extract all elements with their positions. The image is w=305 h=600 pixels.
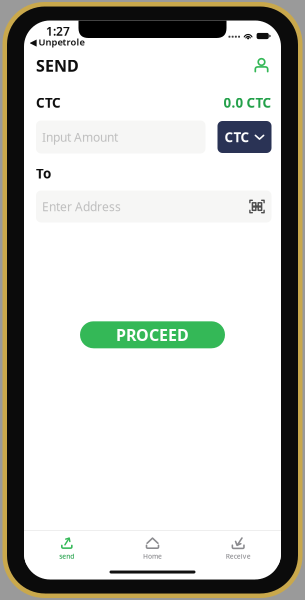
staticText: send — [59, 552, 74, 561]
staticText: To — [36, 164, 51, 182]
staticText: CTC — [36, 94, 61, 111]
staticText: Enter Address — [42, 198, 121, 214]
button[interactable]: Account — [251, 55, 271, 75]
button[interactable]: Home — [110, 529, 195, 567]
button[interactable]: PROCEED — [80, 321, 225, 348]
staticText: Home — [143, 552, 162, 561]
staticText: SEND — [36, 55, 79, 76]
staticText: Receive — [226, 552, 251, 561]
staticText: CTC — [224, 128, 249, 146]
button[interactable]: CTC — [217, 121, 271, 153]
button[interactable]: Receive — [195, 529, 281, 567]
staticText: 1:27 — [46, 23, 70, 39]
button[interactable]: Scan QR code — [248, 198, 265, 215]
staticText: 0.0 CTC — [223, 94, 271, 111]
staticText: ◀ Unpetrole — [29, 36, 84, 48]
staticText: Input Amount — [42, 129, 118, 145]
staticText: PROCEED — [116, 324, 189, 345]
button[interactable]: send — [24, 529, 110, 567]
